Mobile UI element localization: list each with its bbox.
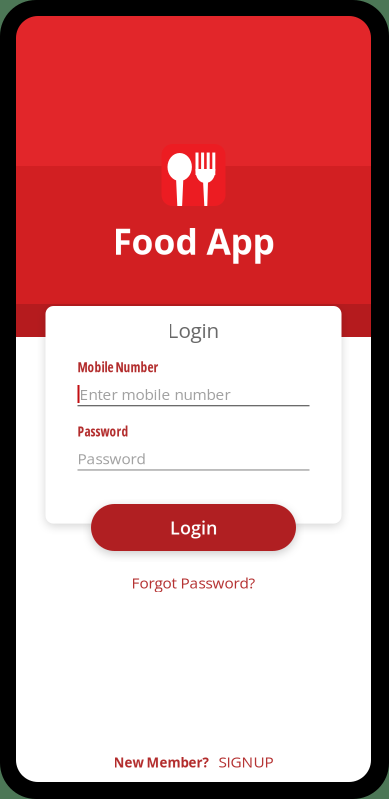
button[interactable]: New Member? (107, 745, 279, 778)
staticText: Password (77, 448, 145, 469)
staticText: Login (170, 515, 217, 540)
staticText: Forgot Password? (131, 572, 255, 593)
staticText: Enter mobile number (79, 384, 230, 404)
staticText: SIGNUP (218, 751, 273, 772)
staticText: Food App (112, 217, 274, 265)
staticText: Password (77, 422, 128, 440)
staticText: Login (167, 316, 219, 344)
button[interactable]: Login (91, 504, 296, 551)
staticText: New Member? (113, 753, 208, 771)
staticText: Mobile Number (77, 358, 158, 376)
button[interactable]: Forgot Password? (126, 567, 260, 598)
